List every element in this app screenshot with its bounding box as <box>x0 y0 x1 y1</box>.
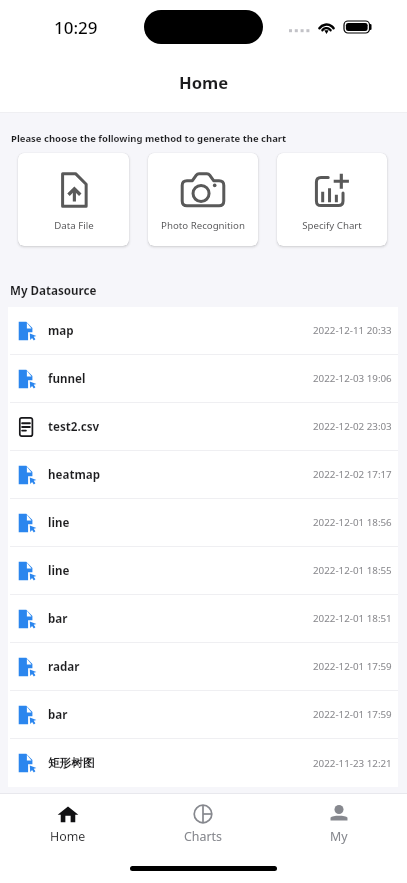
button[interactable]: heatmap <box>8 451 398 498</box>
button[interactable]: Charts <box>135 794 271 850</box>
staticText: 2022-12-11 20:33 <box>313 324 392 337</box>
button[interactable]: My <box>271 794 407 850</box>
button[interactable]: Photo Recognition <box>148 153 258 246</box>
staticText: 2022-12-01 18:51 <box>313 612 392 625</box>
staticText: 2022-12-01 18:56 <box>313 516 392 529</box>
button[interactable]: line <box>8 547 398 594</box>
staticText: 2022-12-01 17:59 <box>313 708 392 721</box>
staticText: 10:29 <box>54 16 98 39</box>
staticText: map <box>48 323 74 339</box>
staticText: 2022-11-23 12:21 <box>313 757 392 770</box>
staticText: 2022-12-01 17:59 <box>313 660 392 673</box>
button[interactable]: bar <box>8 595 398 642</box>
staticText: Specify Chart <box>302 219 362 232</box>
staticText: My Datasource <box>10 283 97 299</box>
staticText: heatmap <box>48 467 101 483</box>
staticText: Charts <box>184 828 222 845</box>
staticText: 矩形树图 <box>48 756 95 771</box>
staticText: test2.csv <box>48 419 100 435</box>
staticText: Home <box>179 71 229 94</box>
staticText: Please choose the following method to ge… <box>11 132 287 145</box>
button[interactable]: Specify Chart <box>277 153 387 246</box>
button[interactable]: map <box>8 307 398 354</box>
button[interactable]: Data File <box>18 153 129 246</box>
staticText: funnel <box>48 371 86 387</box>
staticText: radar <box>48 659 80 675</box>
staticText: bar <box>48 611 68 627</box>
button[interactable]: funnel <box>8 355 398 402</box>
staticText: line <box>48 563 70 579</box>
staticText: Photo Recognition <box>161 219 245 232</box>
button[interactable]: line <box>8 499 398 546</box>
staticText: Home <box>50 828 86 845</box>
staticText: 2022-12-03 19:06 <box>313 372 392 385</box>
button[interactable]: test2.csv <box>8 403 398 450</box>
staticText: 2022-12-01 18:55 <box>313 564 392 577</box>
staticText: 2022-12-02 23:03 <box>313 420 392 433</box>
button[interactable]: bar <box>8 691 398 738</box>
staticText: bar <box>48 707 68 723</box>
staticText: Data File <box>54 219 94 232</box>
button[interactable]: Home <box>0 794 135 850</box>
staticText: 2022-12-02 17:17 <box>313 468 392 481</box>
button[interactable]: radar <box>8 643 398 690</box>
button[interactable]: 矩形树图 <box>8 739 398 787</box>
staticText: line <box>48 515 70 531</box>
staticText: My <box>330 828 348 845</box>
